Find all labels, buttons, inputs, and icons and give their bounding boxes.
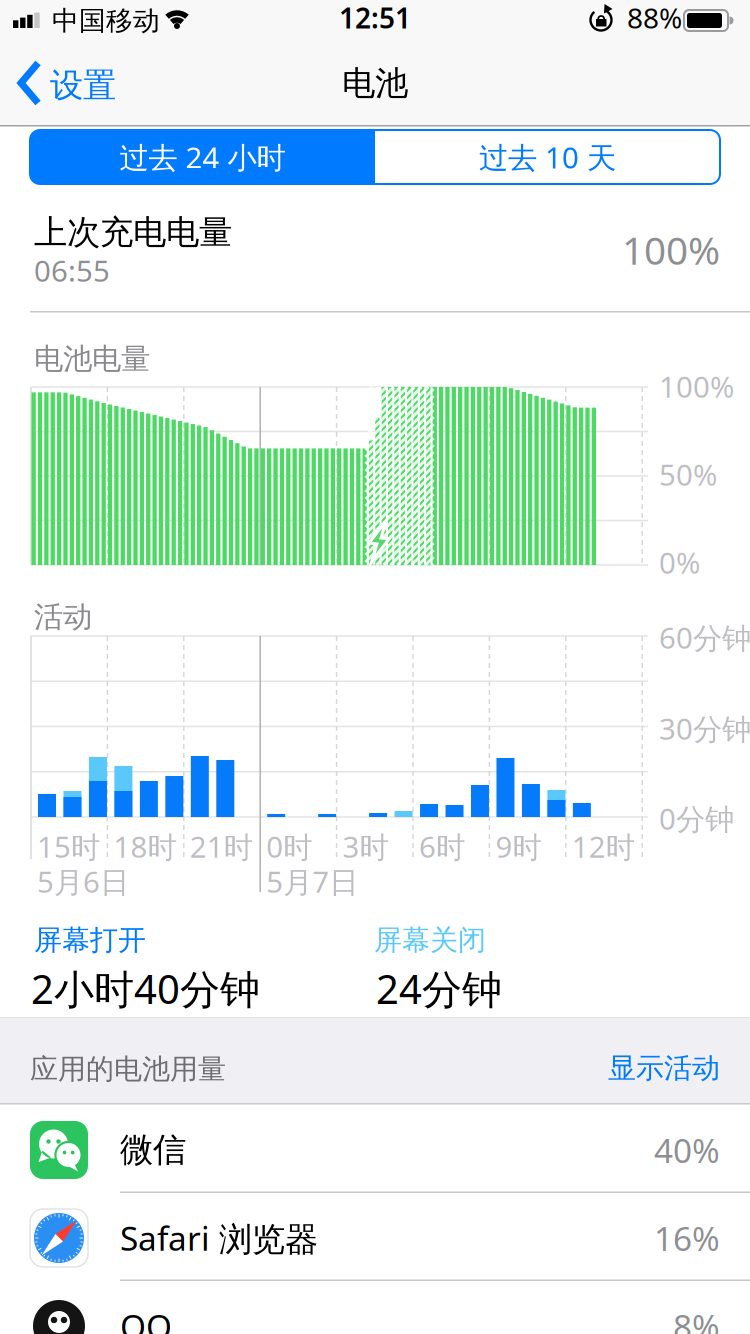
button[interactable]: 过去 10 天	[375, 130, 720, 184]
button[interactable]: 微信	[0, 1106, 750, 1194]
staticText: 18时	[113, 827, 176, 866]
staticText: 电池	[342, 63, 408, 104]
staticText: 0时	[266, 827, 312, 866]
staticText: 3时	[343, 827, 389, 866]
staticText: 活动	[34, 599, 92, 635]
staticText: 2小时40分钟	[31, 962, 260, 1015]
staticText: QQ	[120, 1304, 172, 1334]
staticText: 30分钟	[659, 709, 750, 748]
staticText: 40%	[654, 1128, 720, 1172]
staticText: 100%	[659, 367, 734, 406]
staticText: 显示活动	[608, 1051, 720, 1085]
staticText: 屏幕关闭	[374, 923, 486, 957]
button[interactable]: Safari 浏览器	[0, 1194, 750, 1282]
staticText: 0%	[659, 543, 700, 582]
button[interactable]: QQ	[0, 1282, 750, 1334]
staticText: 过去 24 小时	[119, 137, 285, 176]
staticText: 电池电量	[34, 341, 150, 377]
staticText: 24分钟	[376, 962, 502, 1015]
staticText: 应用的电池用量	[30, 1052, 226, 1086]
staticText: 88%	[627, 0, 682, 36]
staticText: Safari 浏览器	[120, 1216, 318, 1260]
staticText: 中国移动	[52, 5, 160, 37]
staticText: 6时	[419, 827, 465, 866]
button[interactable]: 过去 24 小时	[30, 130, 375, 184]
staticText: 8%	[673, 1304, 720, 1334]
button[interactable]: 显示活动	[0, 1051, 720, 1085]
staticText: 微信	[120, 1129, 186, 1170]
staticText: 5月6日	[37, 862, 129, 901]
staticText: 50%	[659, 455, 717, 494]
staticText: 屏幕打开	[34, 923, 146, 957]
staticText: 12时	[572, 827, 635, 866]
staticText: 100%	[622, 224, 720, 275]
staticText: 设置	[50, 65, 116, 106]
staticText: 12:51	[339, 0, 411, 36]
staticText: 60分钟	[659, 618, 750, 657]
staticText: 16%	[654, 1216, 720, 1260]
staticText: 0分钟	[659, 799, 734, 838]
staticText: 21时	[190, 827, 253, 866]
button[interactable]: 设置	[17, 62, 129, 106]
staticText: 5月7日	[266, 862, 358, 901]
staticText: 15时	[37, 827, 100, 866]
staticText: 9时	[495, 827, 541, 866]
staticText: 06:55	[34, 251, 110, 290]
staticText: 过去 10 天	[479, 137, 616, 176]
staticText: 上次充电电量	[34, 212, 232, 253]
